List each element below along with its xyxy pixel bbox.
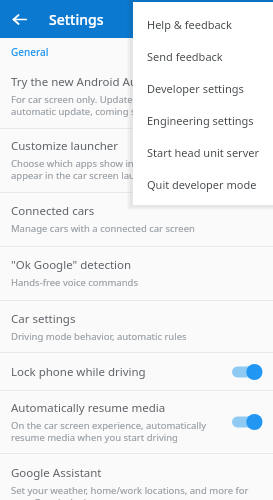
staticText: Hands-free voice commands	[11, 276, 138, 289]
button[interactable]: "Ok Google" detection	[0, 247, 273, 300]
staticText: Customize launcher	[11, 138, 119, 154]
button[interactable]: Lock phone while driving	[0, 353, 273, 390]
staticText: Try the new Android Auto	[11, 74, 149, 90]
button[interactable]: Google Assistant	[0, 454, 273, 500]
staticText: Settings	[49, 10, 104, 29]
staticText: Start head unit server	[147, 145, 259, 160]
staticText: Send feedback	[147, 49, 223, 64]
staticText: Driving mode behavior, automatic rules	[11, 330, 187, 343]
button[interactable]: Connected cars	[0, 193, 273, 246]
staticText: Choose which apps show in and which orde…	[11, 157, 231, 182]
staticText: General	[11, 45, 49, 59]
button[interactable]: Automatically resume media	[0, 391, 273, 453]
button[interactable]: Customize launcher	[0, 129, 273, 192]
staticText: Set your weather, home/work locations, a…	[11, 484, 249, 500]
button[interactable]: Car settings	[0, 301, 273, 352]
staticText: Help & feedback	[147, 17, 232, 32]
staticText: Automatically resume media	[11, 400, 166, 416]
staticText: Lock phone while driving	[11, 364, 230, 380]
staticText: Engineering settings	[147, 113, 254, 128]
button[interactable]: Quit developer mode	[133, 168, 273, 200]
button[interactable]: Help & feedback	[133, 8, 273, 40]
staticText: Quit developer mode	[147, 177, 257, 192]
staticText: Developer settings	[147, 81, 244, 96]
button[interactable]: Start head unit server	[133, 136, 273, 168]
staticText: On the car screen experience, automatica…	[11, 419, 207, 444]
button[interactable]: Try the new Android Auto	[0, 66, 273, 128]
staticText: Car settings	[11, 311, 76, 327]
button[interactable]: Send feedback	[133, 40, 273, 72]
staticText: For car screen only. Update now or wait …	[11, 93, 220, 118]
staticText: Connected cars	[11, 203, 95, 219]
staticText: "Ok Google" detection	[11, 257, 132, 273]
button[interactable]: Engineering settings	[133, 104, 273, 136]
button[interactable]: Back	[0, 0, 38, 38]
button[interactable]: Developer settings	[133, 72, 273, 104]
staticText: Manage cars with a connected car screen	[11, 222, 195, 235]
staticText: Google Assistant	[11, 465, 102, 481]
